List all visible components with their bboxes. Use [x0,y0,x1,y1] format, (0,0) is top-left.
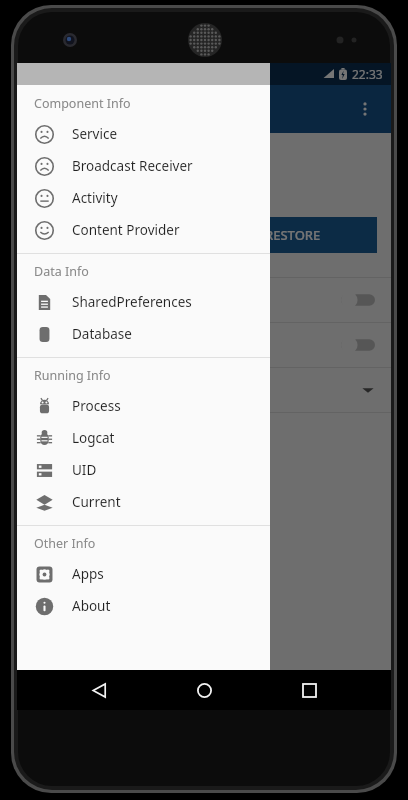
staticText: Service [72,125,118,143]
staticText: Show system installed [33,291,341,309]
button[interactable]: Current [17,486,270,518]
staticText: UID [72,461,97,479]
button[interactable]: About [17,590,270,622]
button[interactable]: Theme Default [33,368,375,412]
staticText: Logcat [72,429,115,447]
button[interactable]: BACKUP [31,217,199,253]
staticText: BACKUP [90,226,141,244]
button[interactable]: UID [17,454,270,486]
staticText: Apps [72,565,104,583]
staticText: 22:33 [352,66,383,82]
button[interactable]: Logcat [17,422,270,454]
staticText: Database [72,325,132,343]
staticText: Current [72,493,121,511]
button[interactable]: SharedPreferences [17,286,270,318]
staticText: Content Provider [72,221,180,239]
button[interactable]: Hide self (this app) [33,323,375,367]
button[interactable]: Process [17,390,270,422]
staticText: Hide self (this app) [33,336,341,354]
staticText: About [72,597,111,615]
staticText: Other Info [34,535,96,552]
staticText: Process [72,397,121,415]
staticText: Component Info [34,95,131,112]
staticText: Broadcast Receiver [72,157,193,175]
button[interactable]: Apps [17,558,270,590]
staticText: SharedPreferences [72,293,192,311]
staticText: Running Info [34,367,111,384]
button[interactable]: Show system installed [33,278,375,322]
button[interactable]: Activity [17,182,270,214]
button[interactable]: Database [17,318,270,350]
button[interactable]: Close navigation drawer [17,63,391,710]
button[interactable]: Home [181,670,227,710]
staticText: Data Info [34,263,89,280]
button[interactable]: More options [345,89,385,129]
staticText: Theme Default [33,381,361,399]
button[interactable]: Content Provider [17,214,270,246]
button[interactable]: Service [17,118,270,150]
button[interactable]: Back [76,670,122,710]
button[interactable]: RESTORE [209,217,377,253]
staticText: RESTORE [265,226,321,244]
button[interactable]: Broadcast Receiver [17,150,270,182]
button[interactable]: Recent apps [286,670,332,710]
staticText: Activity [72,189,118,207]
